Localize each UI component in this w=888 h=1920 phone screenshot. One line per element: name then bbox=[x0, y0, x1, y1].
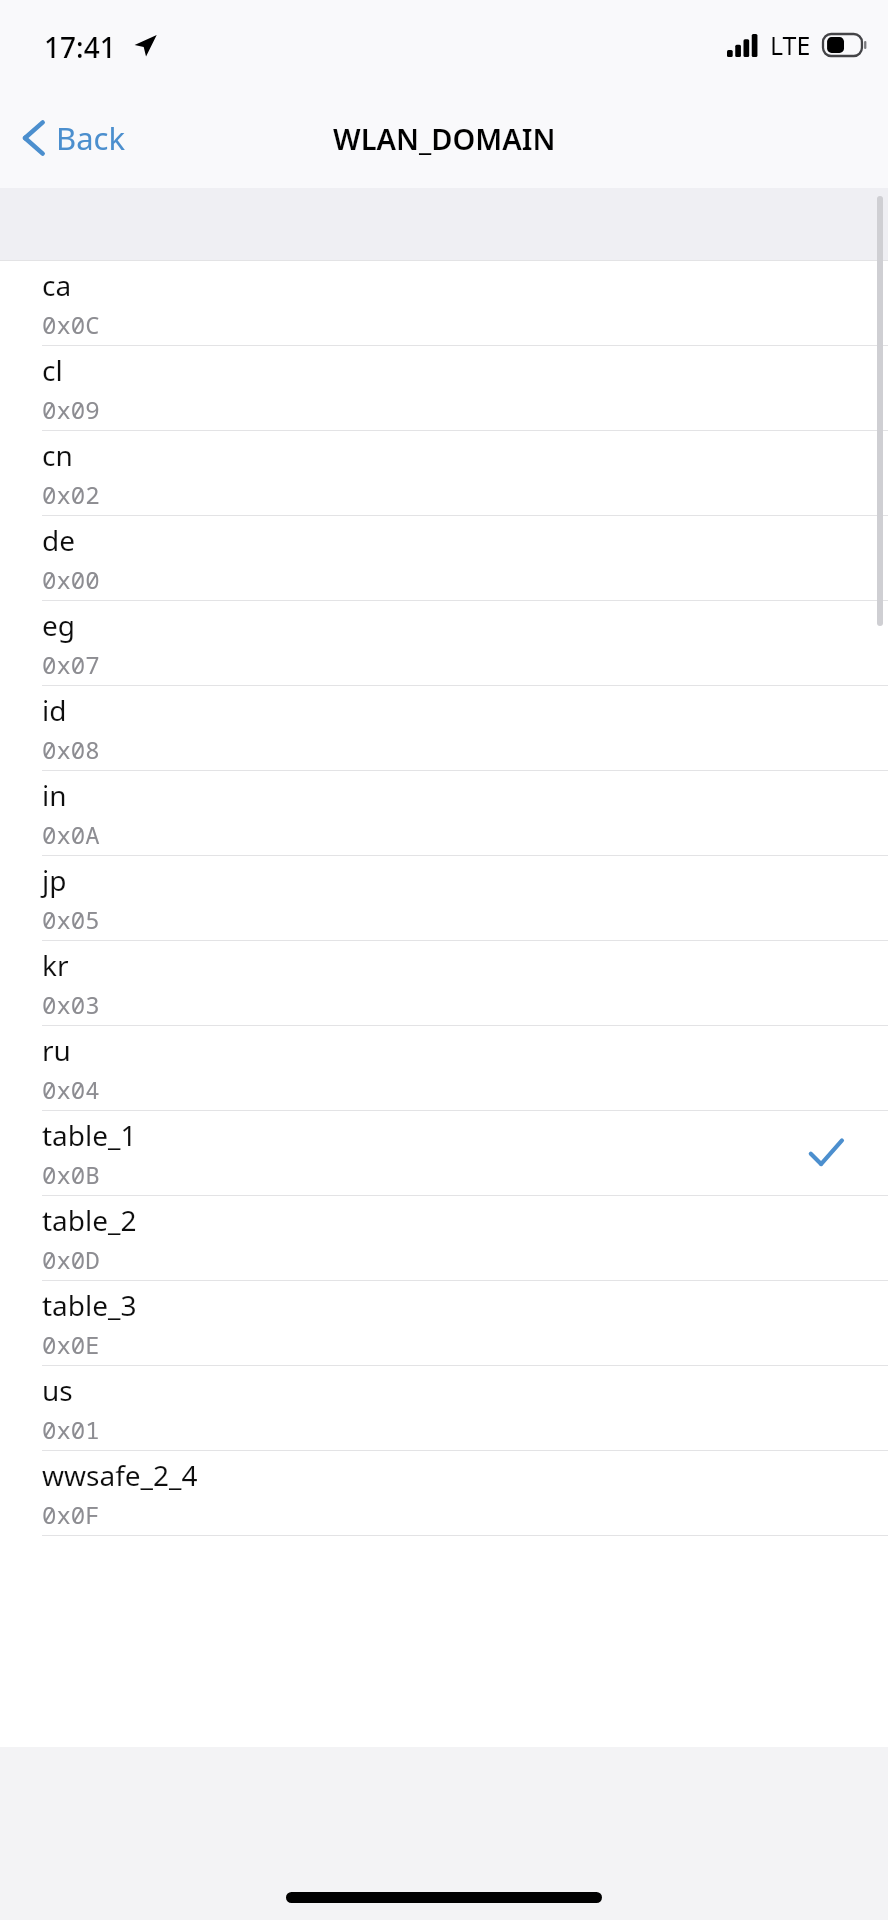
staticText: table_1 bbox=[42, 1116, 137, 1154]
staticText: id bbox=[42, 691, 67, 729]
button[interactable]: in bbox=[0, 771, 888, 856]
button[interactable]: wwsafe_2_4 bbox=[0, 1451, 888, 1536]
button[interactable]: ru bbox=[0, 1026, 888, 1111]
other: Selected bbox=[807, 1134, 845, 1172]
staticText: wwsafe_2_4 bbox=[42, 1456, 198, 1494]
staticText: 0x05 bbox=[42, 903, 100, 936]
staticText: ca bbox=[42, 266, 72, 304]
button[interactable]: kr bbox=[0, 941, 888, 1026]
button[interactable]: table_1 bbox=[0, 1111, 888, 1196]
staticText: 0x01 bbox=[42, 1413, 100, 1446]
button[interactable]: Back bbox=[0, 105, 143, 171]
button[interactable]: de bbox=[0, 516, 888, 601]
staticText: de bbox=[42, 521, 76, 559]
staticText: 0x0A bbox=[42, 818, 100, 851]
staticText: 17:41 bbox=[44, 28, 116, 66]
staticText: 0x02 bbox=[42, 478, 100, 511]
button[interactable]: cn bbox=[0, 431, 888, 516]
button[interactable]: table_2 bbox=[0, 1196, 888, 1281]
staticText: cl bbox=[42, 351, 63, 389]
button[interactable]: eg bbox=[0, 601, 888, 686]
staticText: 0x03 bbox=[42, 988, 100, 1021]
staticText: 0x09 bbox=[42, 393, 100, 426]
staticText: kr bbox=[42, 946, 69, 984]
staticText: 0x0C bbox=[42, 308, 100, 341]
staticText: table_2 bbox=[42, 1201, 137, 1239]
staticText: Back bbox=[56, 117, 125, 159]
staticText: us bbox=[42, 1371, 73, 1409]
button[interactable]: table_3 bbox=[0, 1281, 888, 1366]
button[interactable]: id bbox=[0, 686, 888, 771]
button[interactable]: us bbox=[0, 1366, 888, 1451]
staticText: in bbox=[42, 776, 67, 814]
button[interactable]: jp bbox=[0, 856, 888, 941]
staticText: 0x04 bbox=[42, 1073, 100, 1106]
staticText: WLAN_DOMAIN bbox=[333, 119, 556, 158]
button[interactable]: cl bbox=[0, 346, 888, 431]
staticText: 0x08 bbox=[42, 733, 100, 766]
staticText: LTE bbox=[770, 28, 811, 62]
button[interactable]: ca bbox=[0, 261, 888, 346]
staticText: 0x0F bbox=[42, 1498, 100, 1531]
staticText: jp bbox=[42, 861, 67, 899]
staticText: ru bbox=[42, 1031, 71, 1069]
staticText: 0x0B bbox=[42, 1158, 100, 1191]
staticText: cn bbox=[42, 436, 73, 474]
staticText: 0x00 bbox=[42, 563, 100, 596]
staticText: 0x07 bbox=[42, 648, 100, 681]
staticText: 0x0E bbox=[42, 1328, 100, 1361]
staticText: 0x0D bbox=[42, 1243, 100, 1276]
staticText: eg bbox=[42, 606, 76, 644]
staticText: table_3 bbox=[42, 1286, 137, 1324]
